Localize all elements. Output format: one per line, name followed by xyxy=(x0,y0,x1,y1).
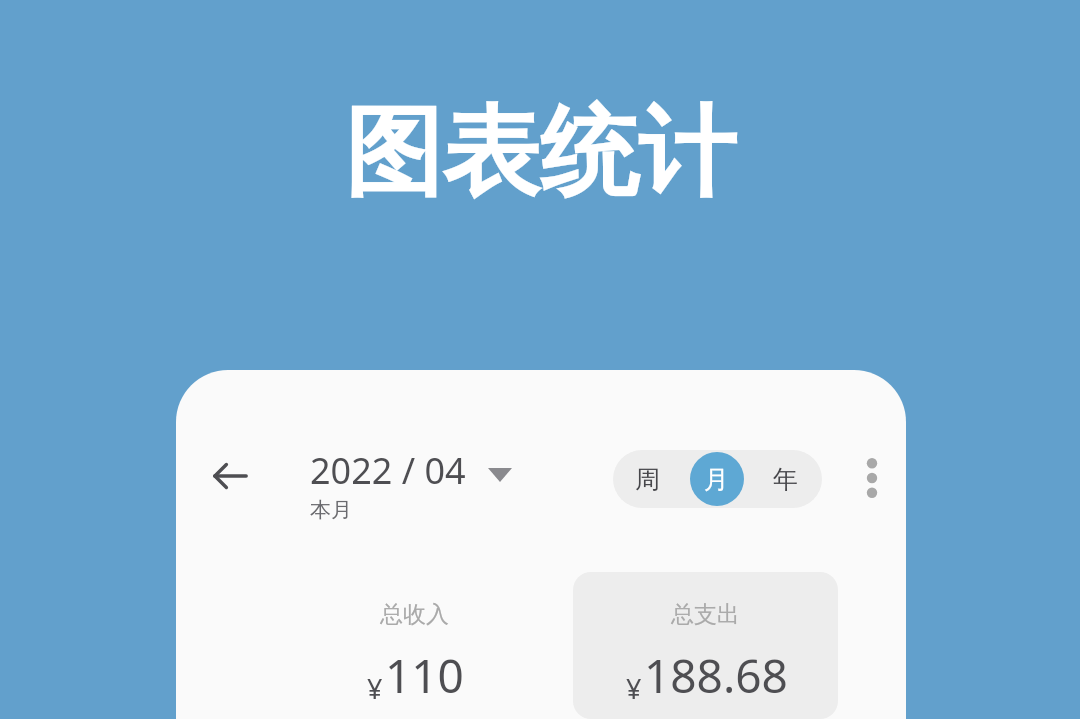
staticText: 110 xyxy=(385,644,464,707)
staticText: ¥ xyxy=(367,670,383,707)
staticText: 图表统计 xyxy=(344,92,736,215)
staticText: 年 xyxy=(773,464,798,495)
button[interactable]: 年 xyxy=(751,450,820,508)
staticText: 188.68 xyxy=(644,644,788,707)
staticText: 总支出 xyxy=(671,600,740,629)
button[interactable]: 总支出 xyxy=(573,572,838,719)
button[interactable]: 月 xyxy=(682,450,751,508)
staticText: ¥ xyxy=(626,670,642,707)
button[interactable]: 2022 / 04 xyxy=(310,446,512,521)
staticText: 总收入 xyxy=(380,600,449,629)
staticText: 周 xyxy=(635,464,660,495)
button[interactable]: 周 xyxy=(613,450,682,508)
button[interactable]: 总收入 xyxy=(282,572,547,719)
staticText: 本月 xyxy=(310,497,352,523)
button[interactable]: Back xyxy=(204,450,256,502)
staticText: 月 xyxy=(704,464,729,495)
staticText: 2022 / 04 xyxy=(310,446,466,495)
button[interactable]: More options xyxy=(842,448,902,508)
